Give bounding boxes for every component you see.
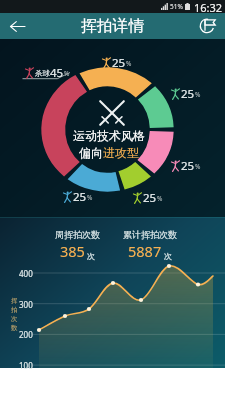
staticText: % xyxy=(195,162,201,171)
staticText: % xyxy=(87,193,93,202)
staticText: 25 xyxy=(143,190,157,206)
staticText: % xyxy=(64,69,70,78)
staticText: 进攻型 xyxy=(103,145,139,160)
staticText: 200 xyxy=(19,329,33,340)
staticText: 运动技术风格 xyxy=(73,128,145,143)
button[interactable]: Stats xyxy=(195,13,221,39)
staticText: 51% xyxy=(170,2,183,11)
staticText: % xyxy=(195,90,201,99)
staticText: 385 xyxy=(60,241,85,261)
staticText: 杀球 xyxy=(35,69,50,78)
staticText: 次 xyxy=(164,251,172,261)
staticText: 25 xyxy=(181,158,195,174)
staticText: 5887 xyxy=(128,241,162,261)
staticText: 偏向 xyxy=(79,145,103,160)
staticText: 拍 xyxy=(11,306,18,315)
staticText: 周挥拍次数 xyxy=(55,229,100,240)
staticText: 25 xyxy=(112,55,126,71)
staticText: % xyxy=(157,194,163,203)
staticText: 45 xyxy=(50,65,64,81)
staticText: 数 xyxy=(11,324,18,333)
staticText: 400 xyxy=(19,268,33,279)
staticText: 挥拍详情 xyxy=(81,16,145,36)
staticText: 累计挥拍次数 xyxy=(123,229,177,240)
staticText: 次 xyxy=(11,315,18,324)
staticText: 25 xyxy=(181,86,195,102)
staticText: 300 xyxy=(19,299,33,310)
staticText: % xyxy=(126,59,132,68)
staticText: 25 xyxy=(73,189,87,205)
staticText: 次 xyxy=(87,251,95,261)
staticText: 16:32 xyxy=(194,0,223,13)
staticText: 挥 xyxy=(11,297,18,306)
button[interactable]: Back xyxy=(4,13,30,39)
staticText: 100 xyxy=(19,360,33,371)
